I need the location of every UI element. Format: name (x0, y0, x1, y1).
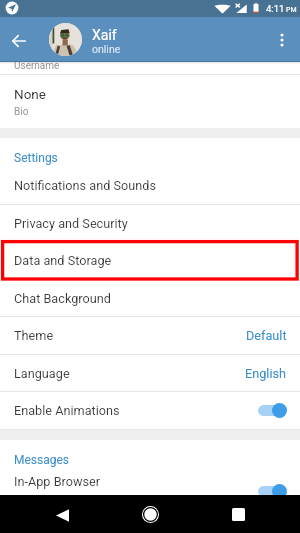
button[interactable]: More options (264, 17, 300, 62)
staticText: Messages (14, 453, 70, 467)
staticText: Notifications and Sounds (14, 178, 156, 193)
button[interactable]: Enable Animations (0, 392, 300, 429)
button[interactable]: Recent apps (216, 495, 260, 533)
button[interactable]: Notifications and Sounds (0, 167, 300, 204)
staticText: None (14, 86, 46, 102)
staticText: Enable Animations (14, 403, 120, 418)
button[interactable]: Chat Background (0, 280, 300, 317)
staticText: Language (14, 366, 70, 381)
staticText: PM (286, 6, 297, 14)
staticText: Settings (14, 151, 58, 165)
staticText: Privacy and Security (14, 216, 128, 231)
staticText: Username (14, 60, 60, 72)
staticText: English (245, 366, 287, 381)
staticText: online (92, 43, 121, 55)
button[interactable]: In-App Browser (0, 463, 300, 500)
staticText: Chat Background (14, 291, 111, 306)
staticText: Theme (14, 328, 54, 343)
staticText: Default (246, 328, 287, 343)
staticText: Data and Storage (14, 253, 112, 268)
button[interactable]: Language (0, 355, 300, 392)
button[interactable]: Home (128, 495, 172, 533)
staticText: Xaif (92, 27, 117, 43)
button[interactable]: Privacy and Security (0, 205, 300, 242)
staticText: In-App Browser (14, 474, 101, 489)
button[interactable]: Theme (0, 317, 300, 354)
button[interactable]: Back (40, 496, 84, 533)
staticText: Bio (14, 106, 29, 118)
button[interactable]: Back (0, 17, 37, 62)
button[interactable]: Data and Storage (0, 242, 300, 279)
staticText: 4:11 (266, 3, 285, 14)
